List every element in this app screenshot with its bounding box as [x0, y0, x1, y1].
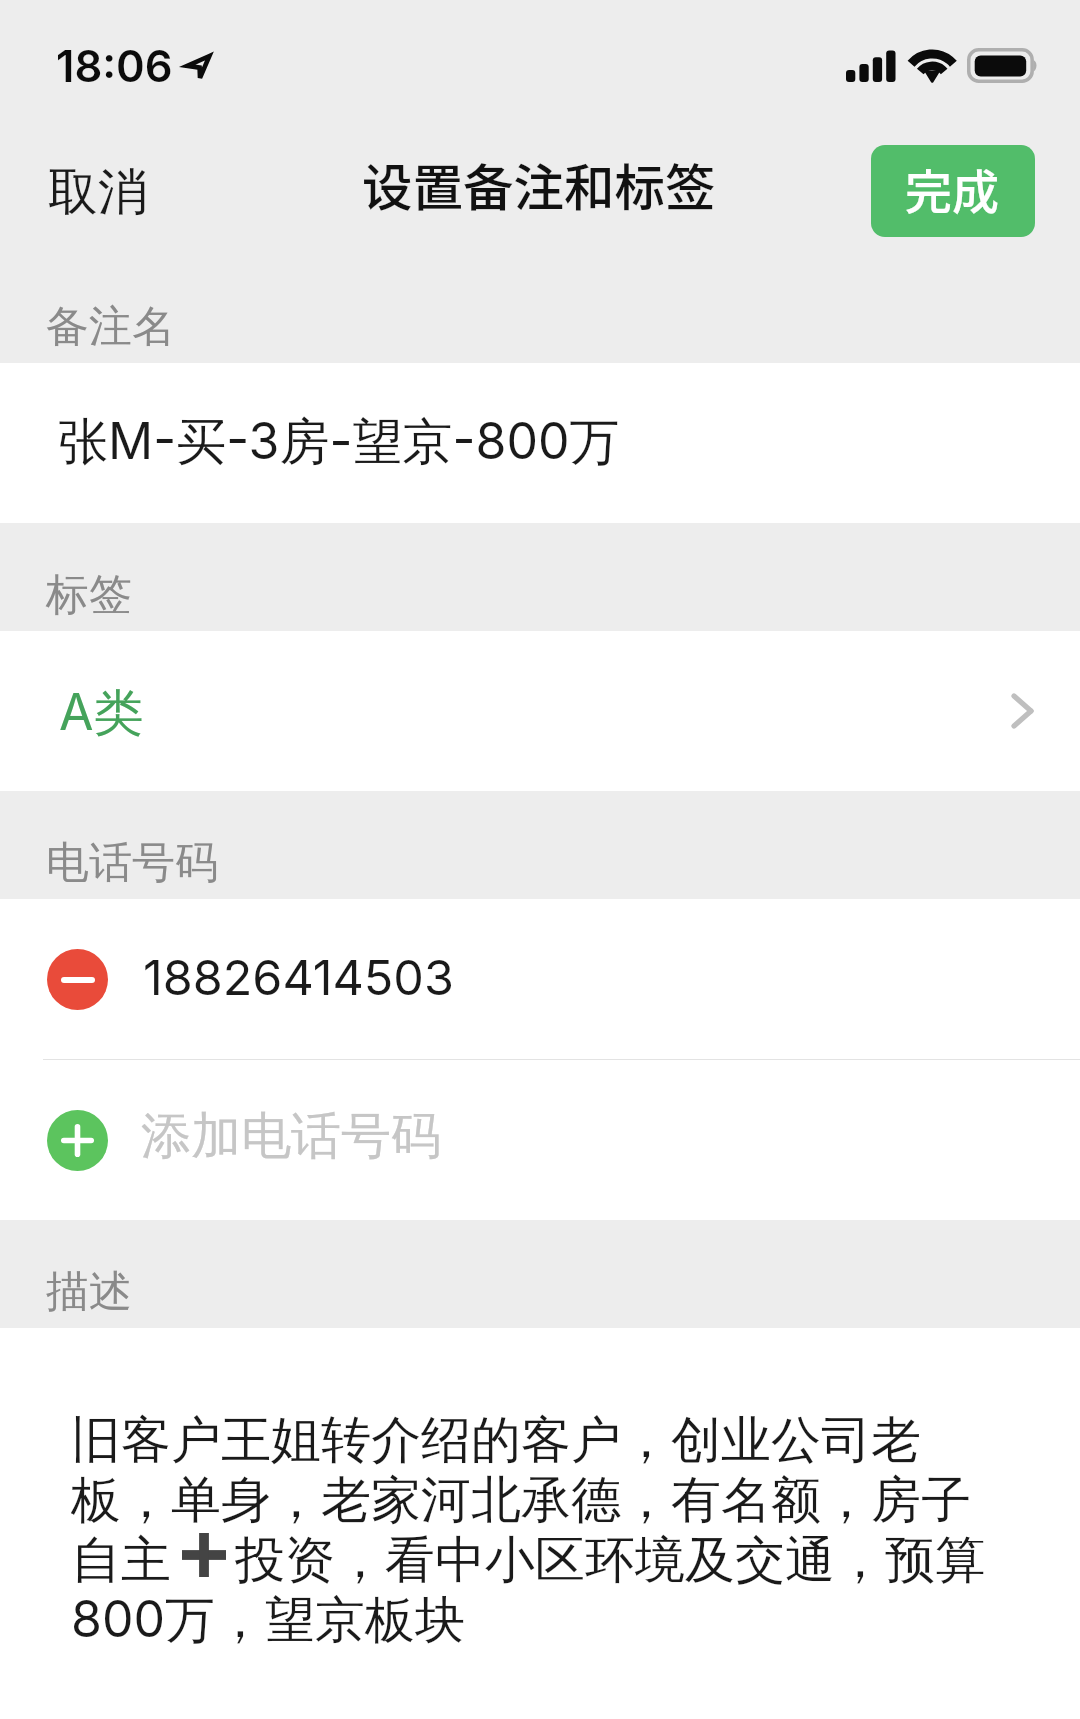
- other: Remove phone number: [47, 949, 108, 1010]
- staticText: 电话号码: [46, 836, 218, 890]
- button[interactable]: Remove phone number: [0, 899, 1080, 1059]
- staticText: 旧客户王姐转介绍的客户，创业公司老: [71, 1409, 921, 1469]
- staticText: 自主: [71, 1529, 171, 1589]
- button[interactable]: 张M-买-3房-望京-800万: [0, 363, 1080, 523]
- button[interactable]: 取消: [0, 120, 172, 255]
- staticText: A类: [59, 682, 144, 745]
- staticText: 板，单身，老家河北承德，有名额，房子: [71, 1469, 971, 1529]
- staticText: 张M-买-3房-望京-800万: [58, 411, 620, 474]
- staticText: 18:06: [56, 40, 173, 93]
- staticText: 完成: [905, 154, 999, 222]
- staticText: 标签: [46, 568, 132, 622]
- other: Open tags: [1012, 694, 1033, 728]
- button[interactable]: 完成: [871, 145, 1035, 237]
- other: Add phone number: [47, 1110, 108, 1171]
- button[interactable]: Add phone number: [0, 1060, 1080, 1220]
- staticText: 描述: [46, 1265, 132, 1319]
- button[interactable]: A类: [0, 631, 1080, 791]
- staticText: 设置备注和标签: [362, 147, 716, 220]
- staticText: 18826414503: [143, 948, 454, 1007]
- staticText: 取消: [48, 161, 148, 224]
- other: Location: [186, 54, 211, 79]
- staticText: 投资，看中小区环境及交通，预算: [235, 1529, 985, 1589]
- button[interactable]: 旧客户王姐转介绍的客户，创业公司老: [0, 1328, 1080, 1719]
- staticText: 添加电话号码: [141, 1105, 441, 1168]
- staticText: 备注名: [46, 300, 175, 354]
- staticText: 800万，望京板块: [71, 1589, 466, 1649]
